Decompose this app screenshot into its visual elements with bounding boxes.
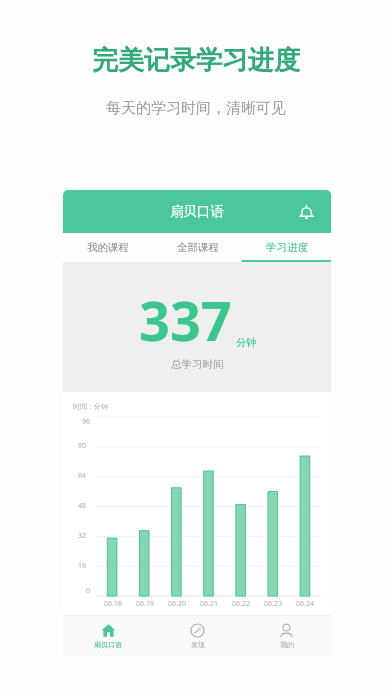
staticText: 06.21 [200,599,218,609]
staticText: 扇贝口语 [94,640,122,649]
staticText: 48 [78,501,87,511]
button[interactable]: 我的课程 [63,233,153,262]
button[interactable]: 全部课程 [153,233,242,262]
staticText: 扇贝口语 [170,203,224,220]
button[interactable]: 学习进度 [242,233,331,262]
staticText: 06.24 [296,599,314,609]
button[interactable]: Notifications [292,198,320,226]
staticText: 06.18 [104,599,122,609]
staticText: 0 [86,586,91,596]
staticText: 16 [78,561,87,571]
staticText: 我的课程 [87,241,129,254]
staticText: 96 [82,417,91,427]
staticText: 时间：分钟 [73,402,108,411]
button[interactable]: 我的 [242,616,331,656]
staticText: 完美记录学习进度 [92,44,300,77]
staticText: 80 [78,441,87,451]
staticText: 06.19 [136,599,154,609]
staticText: 全部课程 [177,241,219,254]
staticText: 学习进度 [266,241,308,254]
staticText: 06.20 [168,599,186,609]
staticText: 337 [139,283,232,357]
staticText: 64 [78,471,87,481]
staticText: 每天的学习时间，清晰可见 [106,99,286,118]
staticText: 发现 [191,640,205,649]
staticText: 32 [78,531,87,541]
button[interactable]: 扇贝口语 [63,616,153,656]
staticText: 06.23 [264,599,282,609]
staticText: 分钟 [236,336,256,349]
staticText: 我的 [280,640,294,649]
staticText: 总学习时间 [171,358,224,371]
button[interactable]: 发现 [153,616,242,656]
staticText: 06.22 [232,599,250,609]
